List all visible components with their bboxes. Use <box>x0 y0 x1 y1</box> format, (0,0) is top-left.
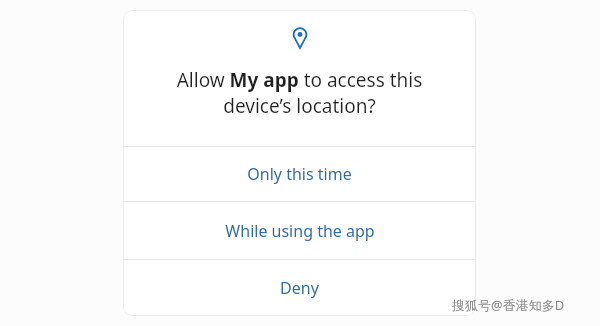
button[interactable]: Only this time <box>123 147 476 201</box>
button[interactable]: While using the app <box>123 202 476 259</box>
staticText: Only this time <box>247 163 352 185</box>
staticText: 搜狐号@香港知多D <box>452 296 565 314</box>
staticText: Deny <box>280 277 319 299</box>
other: Location <box>292 27 308 48</box>
button[interactable]: Deny <box>123 260 476 316</box>
staticText: Allow My app to access this device’s loc… <box>145 67 454 119</box>
staticText: While using the app <box>225 220 375 242</box>
